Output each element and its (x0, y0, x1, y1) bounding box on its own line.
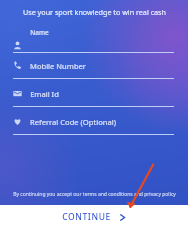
button[interactable]: CONTINUE (0, 205, 188, 229)
other: PHONE (13, 61, 22, 70)
staticText: Use your sport knowledge to win real cas… (23, 7, 166, 17)
staticText: Email Id (30, 89, 59, 99)
button[interactable]: PERSON (0, 38, 188, 52)
staticText: Mobile Number (30, 61, 86, 71)
button[interactable]: MAIL (0, 81, 188, 106)
other: MAIL (13, 89, 22, 98)
staticText: By continuing you accept our terms and c… (13, 191, 176, 198)
button[interactable]: PHONE (0, 53, 188, 78)
other: HEART (13, 117, 22, 126)
staticText: Name (30, 28, 49, 37)
button[interactable]: HEART (0, 109, 188, 134)
staticText: CONTINUE (62, 211, 111, 223)
other: PERSON (13, 41, 22, 50)
staticText: Referral Code (Optional) (30, 117, 116, 127)
